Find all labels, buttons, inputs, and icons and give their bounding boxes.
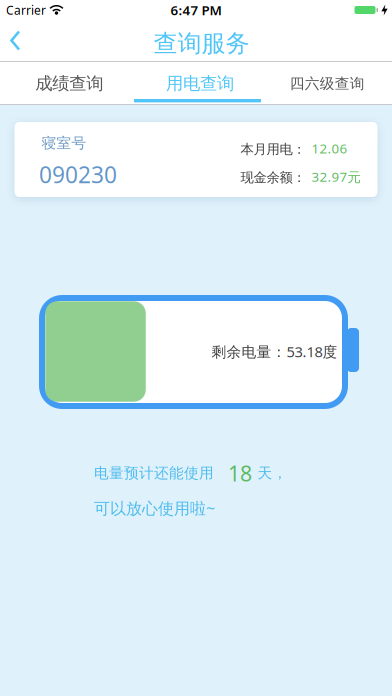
staticText: 查询服务 — [153, 29, 249, 58]
button[interactable]: 四六级查询 — [261, 62, 392, 104]
button[interactable]: Back — [0, 22, 34, 59]
staticText: 6:47 PM — [170, 1, 221, 19]
staticText: 可以放心使用啦~ — [94, 497, 215, 518]
staticText: 现金余额： — [240, 169, 305, 186]
staticText: 成绩查询 — [35, 73, 103, 94]
button[interactable]: 用电查询 — [131, 62, 261, 104]
staticText: 电量预计还能使用 — [94, 464, 214, 482]
staticText: 用电查询 — [166, 73, 234, 94]
staticText: 32.97元 — [311, 168, 360, 185]
button[interactable]: 成绩查询 — [0, 62, 131, 104]
staticText: 12.06 — [311, 139, 347, 157]
staticText: 天， — [257, 464, 287, 482]
staticText: 090230 — [39, 159, 117, 190]
staticText: 本月用电： — [240, 141, 305, 157]
staticText: Carrier — [6, 2, 46, 18]
staticText: 寝室号 — [41, 134, 86, 152]
staticText: 四六级查询 — [290, 74, 365, 92]
staticText: 剩余电量：53.18度 — [211, 342, 337, 361]
staticText: 18 — [228, 459, 252, 487]
